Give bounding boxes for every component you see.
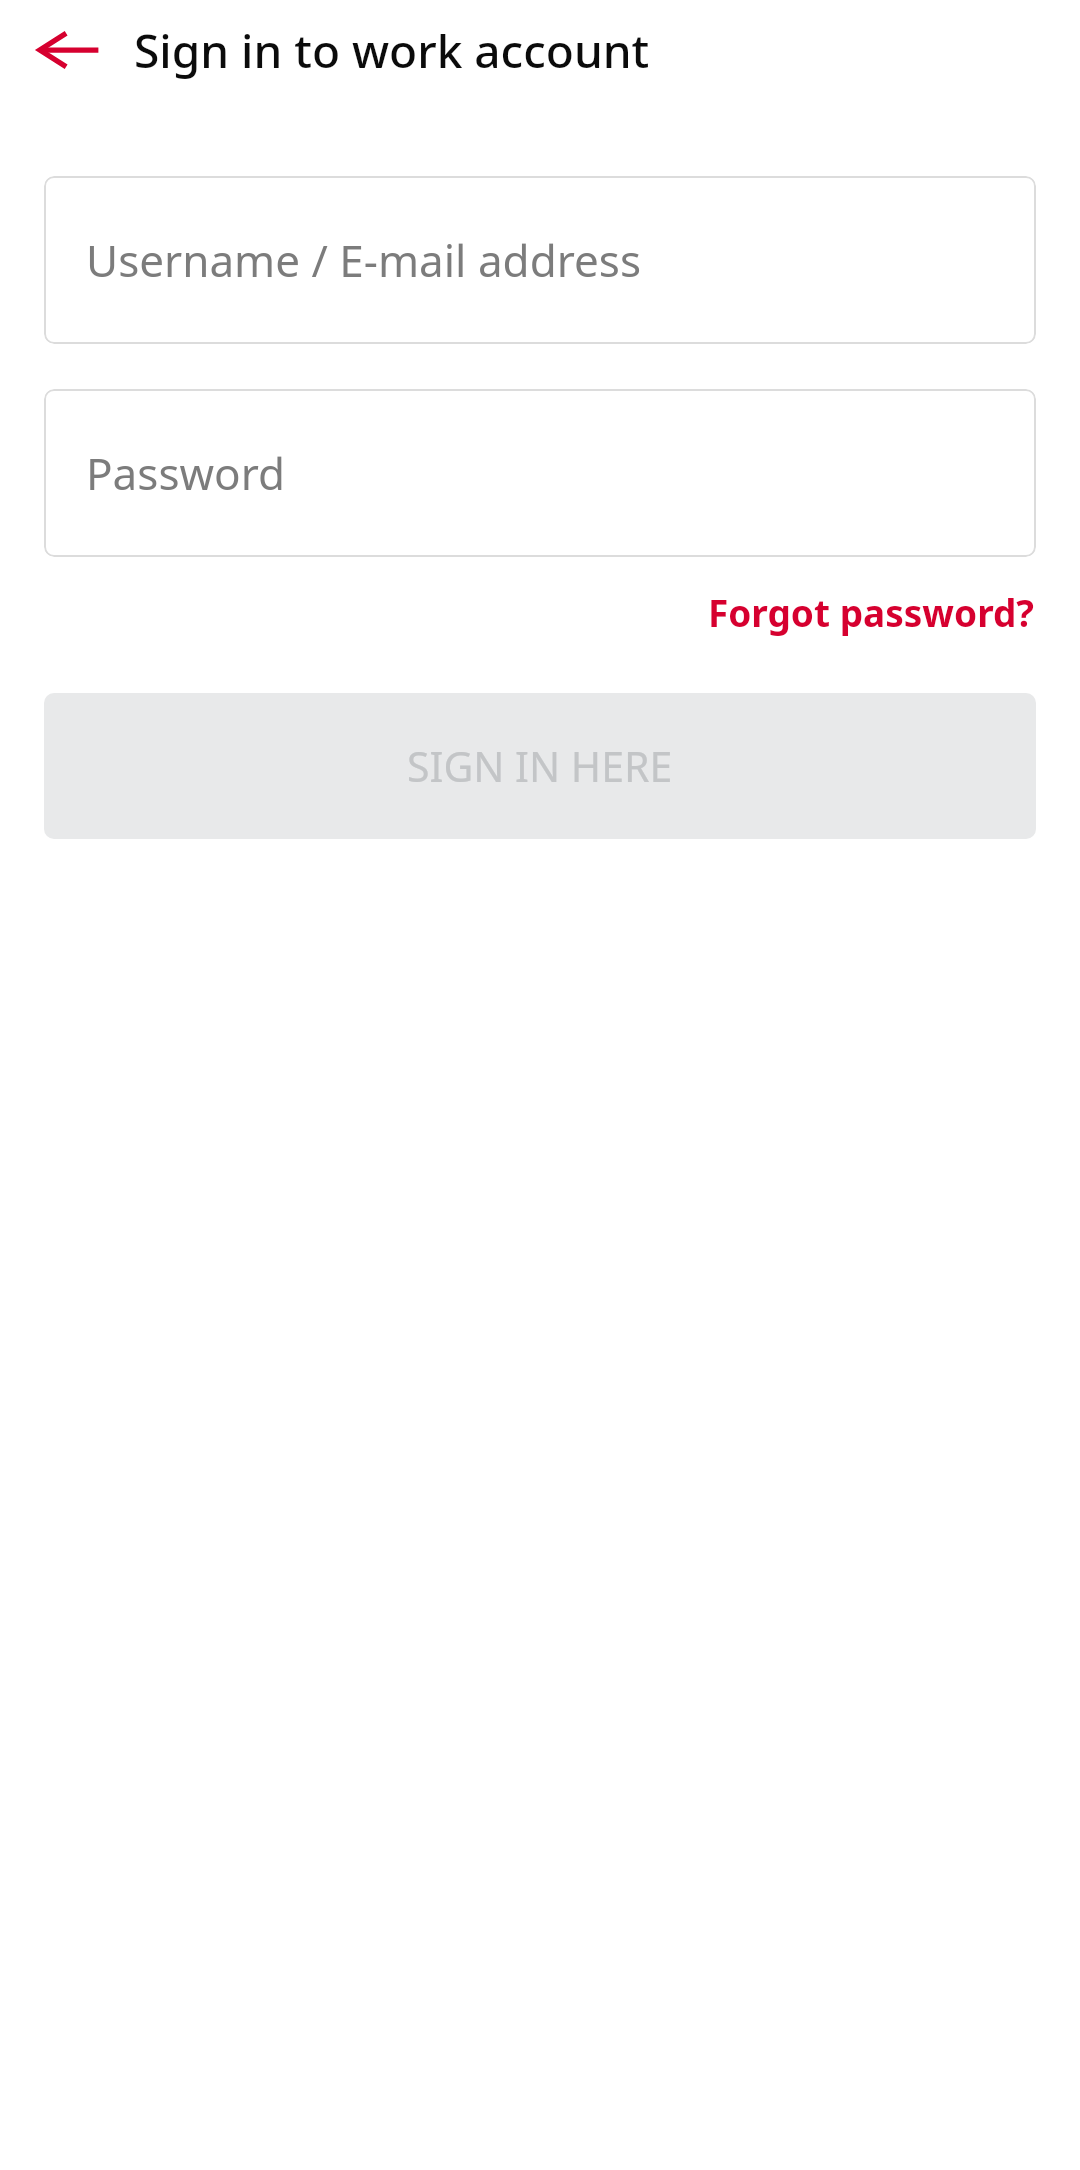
button[interactable]: Password [44,389,1036,557]
staticText: SIGN IN HERE [407,738,673,794]
staticText: Username / E-mail address [86,230,641,290]
button[interactable]: Back [14,0,122,100]
staticText: Password [86,443,286,503]
staticText: Forgot password? [707,587,1034,637]
button[interactable]: Username / E-mail address [44,176,1036,344]
button[interactable]: Forgot password? [705,579,1036,645]
staticText: Sign in to work account [134,19,650,82]
button[interactable]: SIGN IN HERE [44,693,1036,839]
